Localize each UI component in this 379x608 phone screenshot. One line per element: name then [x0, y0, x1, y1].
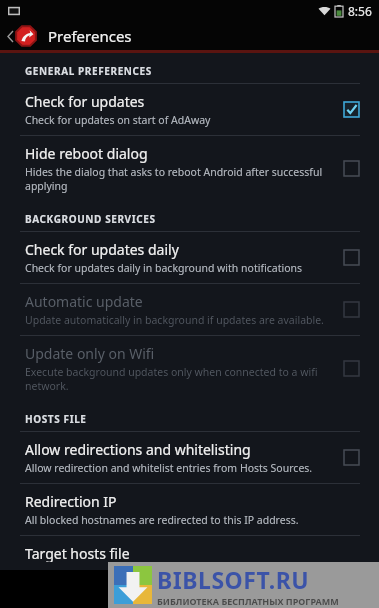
staticText: Update only on Wifi	[25, 344, 155, 363]
staticText: Check for updates	[25, 92, 145, 111]
staticText: HOSTS FILE	[25, 412, 87, 426]
staticText: Redirection IP	[25, 492, 117, 511]
staticText: BACKGROUND SERVICES	[25, 212, 156, 226]
button[interactable]: Check for updates daily	[0, 232, 379, 284]
staticText: Check for updates daily	[25, 240, 179, 259]
button[interactable]: Back	[170, 570, 210, 608]
button[interactable]: Allow redirections and whitelisting	[0, 432, 379, 484]
staticText: Check for updates daily in background wi…	[25, 261, 303, 275]
staticText: БИБЛИОТЕКА БЕСПЛАТНЫХ ПРОГРАММ	[157, 595, 339, 607]
button: Automatic update	[0, 284, 379, 336]
button[interactable]: Target hosts file	[0, 536, 379, 570]
button[interactable]: Redirection IP	[0, 484, 379, 536]
staticText: Allow redirections and whitelisting	[25, 440, 251, 459]
button[interactable]: Check for updates	[0, 84, 379, 136]
staticText: BIBLSOFT.RU	[157, 564, 310, 595]
staticText: Preferences	[48, 26, 132, 46]
staticText: Automatic update	[25, 292, 143, 311]
button[interactable]: Navigate up	[6, 21, 40, 50]
button[interactable]: Hide reboot dialog	[0, 136, 379, 201]
staticText: Hides the dialog that asks to reboot And…	[25, 165, 334, 193]
staticText: All blocked hostnames are redirected to …	[25, 513, 299, 527]
staticText: 8:56	[348, 3, 372, 19]
staticText: Update automatically in background if up…	[25, 313, 324, 327]
button: Update only on Wifi	[0, 336, 379, 401]
staticText: Allow redirection and whitelist entries …	[25, 461, 313, 475]
staticText: Check for updates on start of AdAway	[25, 113, 211, 127]
staticText: Execute background updates only when con…	[25, 365, 334, 393]
staticText: GENERAL PREFERENCES	[25, 64, 152, 78]
staticText: Hide reboot dialog	[25, 144, 148, 163]
staticText: Target hosts file	[25, 544, 130, 562]
